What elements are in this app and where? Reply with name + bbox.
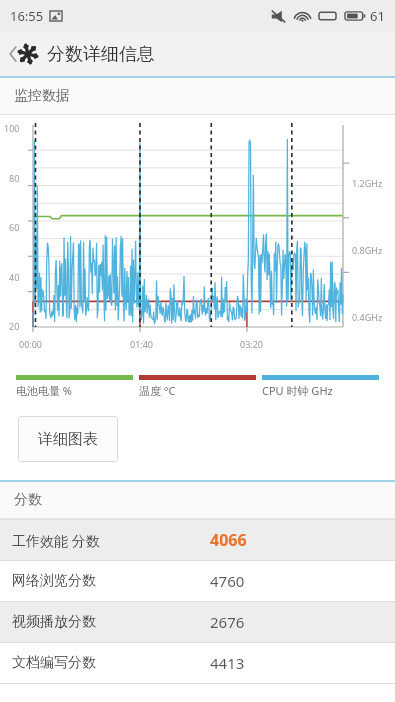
button[interactable]: 网络浏览分数 <box>0 561 395 601</box>
staticText: CPU 时钟 GHz <box>262 383 333 398</box>
staticText: 分数 <box>14 491 42 509</box>
staticText: 100 <box>4 122 20 134</box>
staticText: 16:55 <box>10 7 44 25</box>
staticText: 分数详细信息 <box>47 43 155 66</box>
staticText: 0.4GHz <box>352 311 383 323</box>
button[interactable]: 视频播放分数 <box>0 602 395 642</box>
button[interactable]: 文档编写分数 <box>0 643 395 683</box>
button[interactable]: 工作效能 分数 <box>0 520 395 560</box>
staticText: 视频播放分数 <box>12 613 96 631</box>
staticText: 03:20 <box>240 338 264 350</box>
button[interactable]: 详细图表 <box>18 416 118 462</box>
staticText: 0.8GHz <box>352 244 383 256</box>
staticText: 61 <box>370 7 385 25</box>
staticText: 2676 <box>210 612 245 632</box>
staticText: 00:00 <box>19 338 43 350</box>
staticText: 监控数据 <box>14 87 70 105</box>
staticText: 01:40 <box>130 338 154 350</box>
staticText: 4066 <box>210 529 247 551</box>
staticText: 文档编写分数 <box>12 654 96 672</box>
staticText: 详细图表 <box>38 430 98 449</box>
staticText: 工作效能 分数 <box>12 531 100 550</box>
staticText: 80 <box>9 172 20 184</box>
button[interactable]: Back <box>6 37 40 71</box>
staticText: 网络浏览分数 <box>12 572 96 590</box>
staticText: 电池电量 % <box>16 383 73 398</box>
staticText: 4413 <box>210 653 245 673</box>
staticText: 40 <box>9 271 20 283</box>
staticText: 温度 °C <box>139 383 176 398</box>
staticText: 20 <box>9 320 20 332</box>
staticText: 4760 <box>210 571 245 591</box>
staticText: 1.2GHz <box>352 177 383 189</box>
staticText: 60 <box>9 221 20 233</box>
